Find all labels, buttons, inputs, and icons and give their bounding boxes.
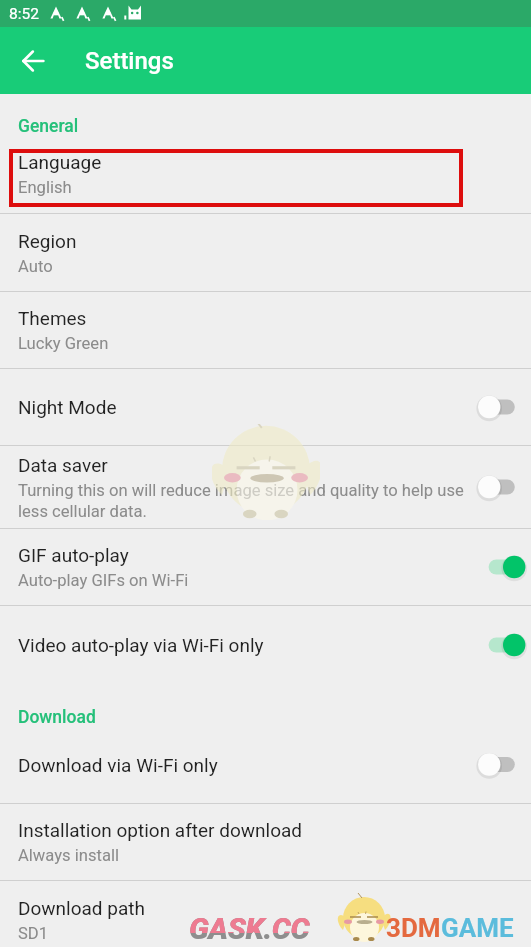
button[interactable]: Download path (0, 881, 531, 947)
staticText: Data saver (18, 454, 108, 476)
staticText: Always install (18, 846, 120, 865)
staticText: GAME (441, 913, 514, 943)
staticText: GASK.CC (189, 911, 310, 933)
staticText: SD1 (18, 924, 49, 943)
staticText: Auto (18, 257, 53, 276)
button[interactable]: GIF auto-play (0, 529, 531, 605)
staticText: General (18, 116, 79, 137)
button[interactable]: Video auto-play via Wi-Fi only (0, 606, 531, 684)
button[interactable]: Data saver (0, 446, 531, 528)
button[interactable]: Switch off (471, 369, 531, 445)
button[interactable]: Switch on (471, 529, 531, 605)
button[interactable]: Download via Wi-Fi only (0, 726, 531, 803)
staticText: Themes (18, 307, 87, 329)
button[interactable]: Switch off (471, 726, 531, 803)
staticText: English (18, 178, 72, 197)
button[interactable]: Switch off (471, 446, 531, 528)
staticText: Video auto-play via Wi-Fi only (18, 634, 264, 656)
button[interactable]: Region (0, 214, 531, 291)
staticText: GASK.CC (189, 911, 310, 946)
staticText: Language (18, 151, 102, 173)
button[interactable]: Language (0, 135, 531, 213)
staticText: Auto-play GIFs on Wi-Fi (18, 571, 189, 590)
button[interactable]: Installation option after download (0, 804, 531, 880)
staticText: Region (18, 230, 77, 252)
staticText: Download path (18, 897, 145, 919)
staticText: Installation option after download (18, 819, 303, 841)
staticText: Turning this on will reduce image size a… (18, 481, 471, 521)
staticText: 8:52 (9, 5, 39, 23)
button[interactable]: Switch on (471, 606, 531, 684)
staticText: Settings (85, 47, 174, 75)
button[interactable]: Back (10, 38, 56, 84)
staticText: Download via Wi-Fi only (18, 754, 218, 776)
button[interactable]: Night Mode (0, 369, 531, 445)
staticText: 3DM (386, 913, 441, 943)
staticText: Night Mode (18, 396, 117, 418)
button[interactable]: Themes (0, 292, 531, 368)
staticText: GIF auto-play (18, 544, 129, 566)
staticText: Download (18, 707, 96, 728)
staticText: Lucky Green (18, 334, 109, 353)
